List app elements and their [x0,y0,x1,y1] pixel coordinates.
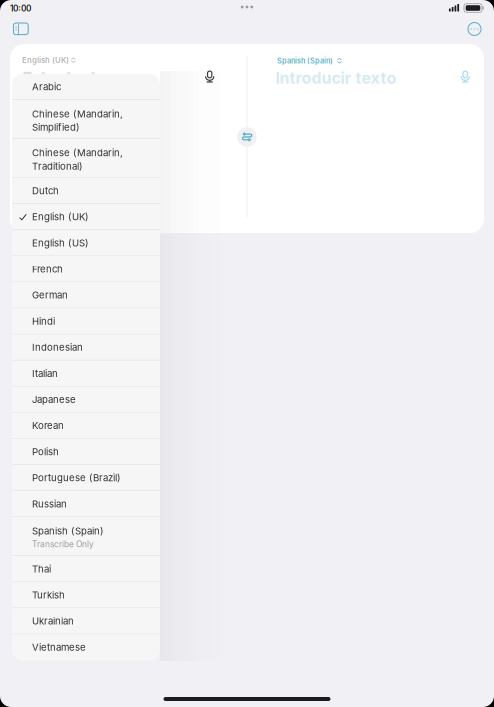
button[interactable]: Dutch [12,178,160,204]
button[interactable]: Spanish (Spain) [273,52,347,69]
staticText: Russian [32,498,67,510]
button[interactable]: Polish [12,439,160,465]
button[interactable]: More [463,17,486,40]
staticText: Simplified) [32,121,80,133]
staticText: English (UK) [32,211,89,223]
button[interactable]: French [12,256,160,282]
button[interactable]: Spanish (Spain) [12,517,160,556]
button[interactable]: Russian [12,491,160,517]
staticText: German [32,289,68,301]
button[interactable]: Portuguese (Brazil) [12,465,160,491]
button[interactable]: English (US) [12,230,160,256]
staticText: Transcribe Only [32,539,94,549]
button[interactable]: English (UK) [12,204,160,230]
button[interactable]: Italian [12,361,160,387]
staticText: Hindi [32,315,55,327]
button[interactable]: Korean [12,413,160,439]
staticText: Chinese (Mandarin, [32,108,123,120]
staticText: Portuguese (Brazil) [32,472,121,484]
button[interactable]: Ukrainian [12,608,160,634]
staticText: French [32,263,63,275]
button[interactable]: Vietnamese [12,634,160,660]
staticText: Vietnamese [32,641,86,653]
staticText: Introducir texto [276,68,397,88]
staticText: Thai [32,563,51,575]
staticText: Korean [32,420,64,431]
staticText: Ukrainian [32,615,74,627]
button[interactable]: Introducir texto [272,64,401,92]
staticText: Arabic [32,81,61,93]
button[interactable]: Show sidebar [8,18,33,40]
staticText: Polish [32,446,59,457]
button[interactable]: Thai [12,556,160,582]
staticText: Japanese [32,394,76,405]
button[interactable]: Speak in English [198,65,222,89]
staticText: English (UK) [22,55,69,65]
staticText: Turkish [32,589,65,601]
button[interactable]: English (UK) [18,51,81,69]
staticText: Spanish (Spain) [277,56,333,65]
button[interactable]: Japanese [12,387,160,413]
button[interactable]: German [12,282,160,308]
staticText: Chinese (Mandarin, [32,147,123,159]
staticText: Spanish (Spain) [32,525,104,537]
staticText: Italian [32,368,58,379]
button[interactable]: Indonesian [12,334,160,361]
button[interactable]: Hindi [12,308,160,334]
staticText: Dutch [32,185,59,196]
button[interactable]: Play translation [453,65,477,89]
button[interactable]: Arabic [12,74,160,100]
staticText: Traditional) [32,160,83,172]
staticText: English (US) [32,237,89,249]
button[interactable]: Turkish [12,582,160,608]
staticText: 10:00 [10,3,31,13]
button[interactable]: Swap languages [237,127,257,147]
button[interactable]: Chinese (Mandarin, [12,139,160,178]
staticText: Indonesian [32,341,83,353]
button[interactable]: Chinese (Mandarin, [12,100,160,139]
